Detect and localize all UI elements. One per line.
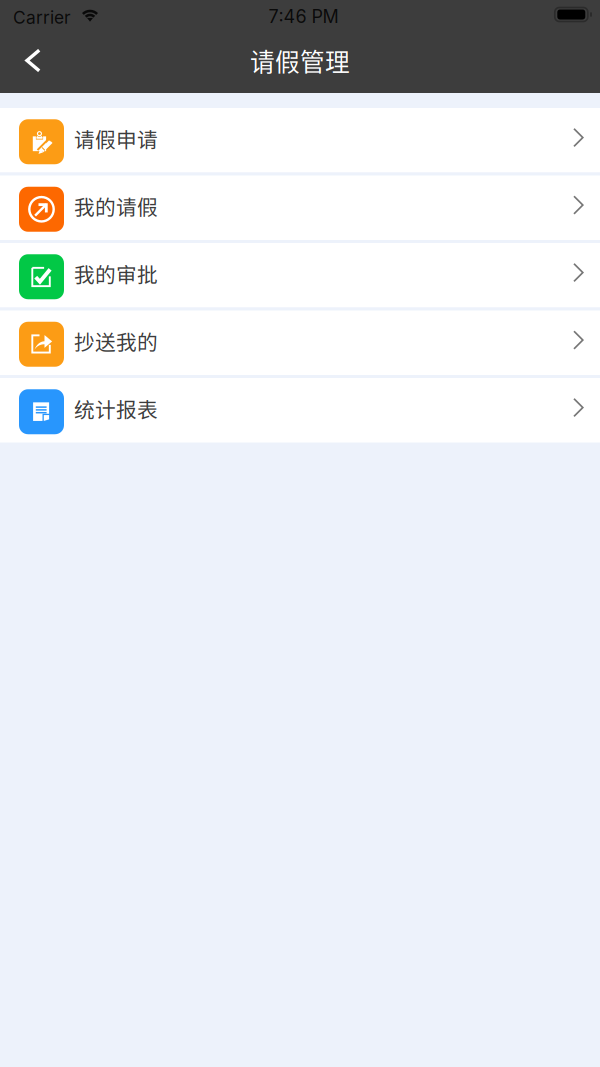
staticText: 抄送我的 bbox=[74, 326, 158, 356]
button[interactable]: 抄送我的 bbox=[0, 310, 600, 375]
staticText: 7:46 PM bbox=[268, 6, 338, 27]
staticText: 请假管理 bbox=[250, 43, 350, 78]
button[interactable]: 统计报表 bbox=[0, 378, 600, 442]
button[interactable]: 我的请假 bbox=[0, 175, 600, 240]
staticText: 我的审批 bbox=[74, 259, 158, 289]
button[interactable]: 请假申请 bbox=[0, 108, 600, 172]
staticText: 统计报表 bbox=[74, 394, 158, 424]
button[interactable]: Back bbox=[0, 35, 66, 93]
staticText: 我的请假 bbox=[74, 191, 158, 221]
staticText: Carrier bbox=[13, 7, 71, 28]
button[interactable]: 我的审批 bbox=[0, 243, 600, 307]
staticText: 请假申请 bbox=[74, 124, 158, 154]
